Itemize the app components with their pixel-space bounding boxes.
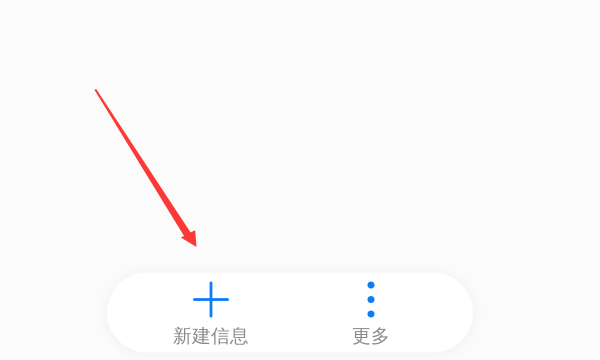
button[interactable]: 更多 [291, 272, 451, 352]
staticText: 更多 [352, 324, 390, 347]
staticText: 新建信息 [173, 324, 249, 347]
button[interactable]: 新建信息 [131, 272, 291, 352]
